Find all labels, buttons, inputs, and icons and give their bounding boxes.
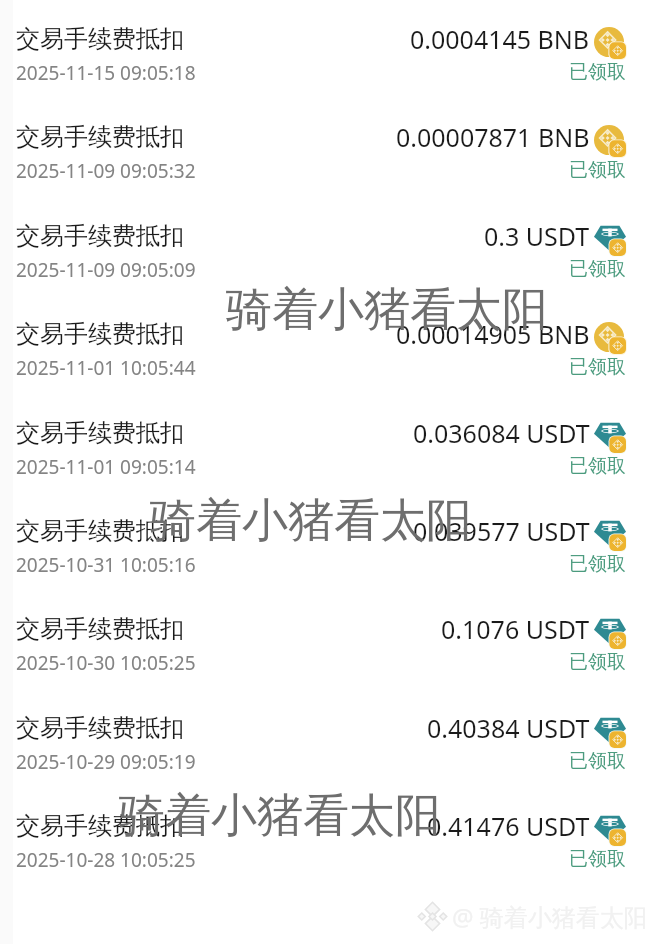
button[interactable]: 交易手续费抵扣	[0, 394, 652, 492]
staticText: 0.41476 USDT	[427, 809, 590, 843]
staticText: 已领取	[569, 847, 626, 871]
other: BNB	[594, 125, 626, 157]
other: BNB	[594, 322, 626, 354]
staticText: 2025-10-30 10:05:25	[16, 650, 196, 676]
staticText: 交易手续费抵扣	[16, 713, 184, 743]
staticText: 0.0004145 BNB	[410, 22, 590, 56]
other: USDT	[594, 617, 626, 649]
staticText: 0.40384 USDT	[427, 711, 590, 745]
staticText: 2025-11-15 09:05:18	[16, 60, 196, 86]
staticText: 交易手续费抵扣	[16, 516, 184, 546]
staticText: 交易手续费抵扣	[16, 319, 184, 349]
button[interactable]: 交易手续费抵扣	[0, 492, 652, 590]
button[interactable]: 交易手续费抵扣	[0, 295, 652, 393]
button[interactable]: 交易手续费抵扣	[0, 689, 652, 787]
other: USDT	[594, 716, 626, 748]
other: USDT	[594, 421, 626, 453]
staticText: 已领取	[569, 60, 626, 84]
other: BNB	[594, 27, 626, 59]
staticText: 2025-11-01 10:05:44	[16, 355, 196, 381]
staticText: 已领取	[569, 257, 626, 281]
staticText: 0.00014905 BNB	[396, 317, 590, 351]
staticText: 0.00007871 BNB	[396, 120, 590, 154]
staticText: 已领取	[569, 355, 626, 379]
staticText: 已领取	[569, 749, 626, 773]
button[interactable]: 交易手续费抵扣	[0, 197, 652, 295]
other: USDT	[594, 519, 626, 551]
staticText: 骑着小猪看太阳	[150, 492, 472, 550]
staticText: 交易手续费抵扣	[16, 811, 184, 841]
button[interactable]: 交易手续费抵扣	[0, 98, 652, 196]
other: USDT	[594, 814, 626, 846]
staticText: 2025-11-09 09:05:32	[16, 158, 196, 184]
other: USDT	[594, 224, 626, 256]
staticText: 0.1076 USDT	[441, 612, 590, 646]
staticText: 2025-10-28 10:05:25	[16, 847, 196, 873]
staticText: 2025-10-29 09:05:19	[16, 749, 196, 775]
button[interactable]: 交易手续费抵扣	[0, 590, 652, 688]
button[interactable]: 交易手续费抵扣	[0, 0, 652, 98]
staticText: 交易手续费抵扣	[16, 221, 184, 251]
staticText: 已领取	[569, 158, 626, 182]
staticText: 2025-11-01 09:05:14	[16, 454, 196, 480]
staticText: 0.036084 USDT	[413, 416, 590, 450]
staticText: 交易手续费抵扣	[16, 122, 184, 152]
staticText: 2025-11-09 09:05:09	[16, 257, 196, 283]
staticText: 交易手续费抵扣	[16, 24, 184, 54]
staticText: 0.039577 USDT	[413, 514, 590, 548]
staticText: 已领取	[569, 552, 626, 576]
staticText: 交易手续费抵扣	[16, 418, 184, 448]
staticText: 交易手续费抵扣	[16, 614, 184, 644]
staticText: 0.3 USDT	[484, 219, 590, 253]
staticText: 2025-10-31 10:05:16	[16, 552, 196, 578]
staticText: 已领取	[569, 650, 626, 674]
staticText: 骑着小猪看太阳	[226, 281, 548, 339]
staticText: @ 骑着小猪看太阳	[452, 900, 648, 933]
button[interactable]: 交易手续费抵扣	[0, 787, 652, 885]
staticText: 骑着小猪看太阳	[119, 787, 441, 845]
staticText: 已领取	[569, 454, 626, 478]
